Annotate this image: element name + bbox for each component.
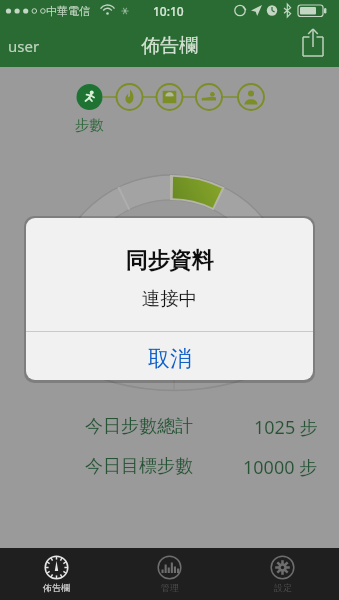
button[interactable]: Share <box>296 26 330 60</box>
staticText: 佈告欄 <box>141 34 198 58</box>
staticText: user <box>8 36 40 56</box>
staticText: 連接中 <box>26 287 313 310</box>
staticText: 今日目標步數 <box>85 455 193 478</box>
staticText: 設定 <box>274 582 292 593</box>
button[interactable]: 佈告欄 <box>0 548 113 600</box>
button[interactable]: 管理 <box>113 548 226 600</box>
staticText: 10:10 <box>153 3 184 19</box>
staticText: 取消 <box>148 345 192 373</box>
staticText: 中華電信 <box>46 4 90 18</box>
staticText: 管理 <box>161 582 179 593</box>
staticText: 今日步數總計 <box>85 415 193 438</box>
staticText: 同步資料 <box>26 247 313 275</box>
staticText: 佈告欄 <box>43 582 70 593</box>
staticText: 10000 步 <box>243 455 318 480</box>
button[interactable]: 取消 <box>26 332 313 380</box>
staticText: 步數 <box>75 116 104 134</box>
staticText: 1025 步 <box>254 415 318 440</box>
button[interactable]: 設定 <box>226 548 339 600</box>
